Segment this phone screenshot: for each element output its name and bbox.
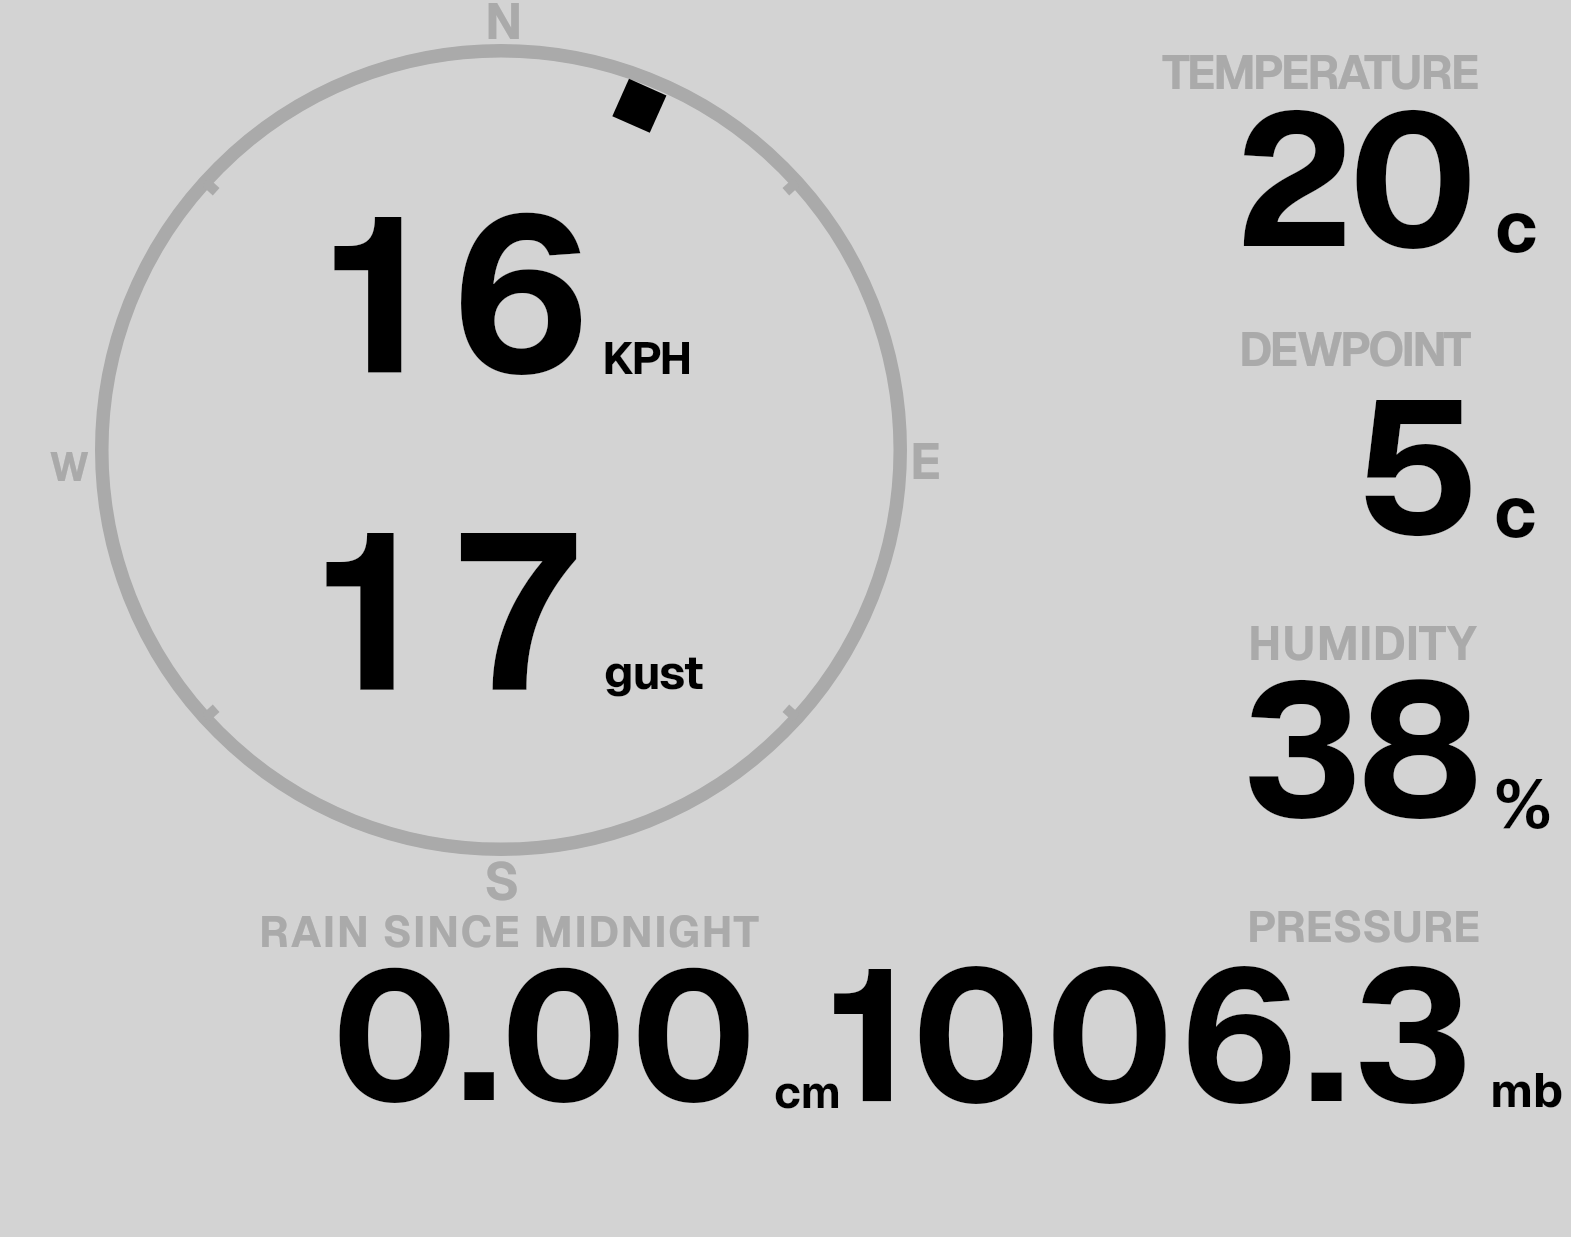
staticText: c bbox=[1495, 181, 1538, 273]
staticText: 16 bbox=[326, 152, 622, 437]
staticText: DEWPOINT bbox=[1239, 319, 1470, 379]
button[interactable]: Pressure 1006.3 mb bbox=[860, 900, 1560, 1125]
staticText: 17 bbox=[318, 469, 618, 755]
staticText: N bbox=[485, 0, 523, 54]
staticText: KPH bbox=[602, 328, 691, 388]
staticText: 20 bbox=[1233, 58, 1474, 301]
staticText: gust bbox=[604, 642, 703, 703]
staticText: 38 bbox=[1241, 628, 1478, 871]
staticText: RAIN SINCE MIDNIGHT bbox=[259, 904, 761, 960]
staticText: % bbox=[1494, 758, 1552, 849]
button[interactable]: Wind direction compass, 16 KPH, gusting … bbox=[95, 44, 907, 856]
staticText: S bbox=[484, 848, 520, 916]
button[interactable]: Temperature 20 degrees Celsius bbox=[1150, 40, 1570, 270]
staticText: mb bbox=[1490, 1059, 1564, 1121]
staticText: 5 bbox=[1355, 344, 1482, 588]
staticText: TEMPERATURE bbox=[1162, 42, 1478, 102]
staticText: c bbox=[1494, 466, 1537, 558]
button[interactable]: Humidity 38 percent bbox=[1150, 610, 1570, 840]
button[interactable]: Dewpoint 5 degrees Celsius bbox=[1150, 315, 1570, 545]
button[interactable]: Rain since midnight 0.00 cm bbox=[250, 900, 850, 1125]
staticText: W bbox=[49, 441, 90, 493]
staticText: E bbox=[910, 429, 942, 494]
staticText: PRESSURE bbox=[1247, 898, 1481, 955]
staticText: cm bbox=[774, 1063, 841, 1121]
staticText: 0.00 bbox=[331, 917, 761, 1154]
staticText: 1006.3 bbox=[827, 914, 1477, 1156]
staticText: HUMIDITY bbox=[1248, 613, 1477, 673]
